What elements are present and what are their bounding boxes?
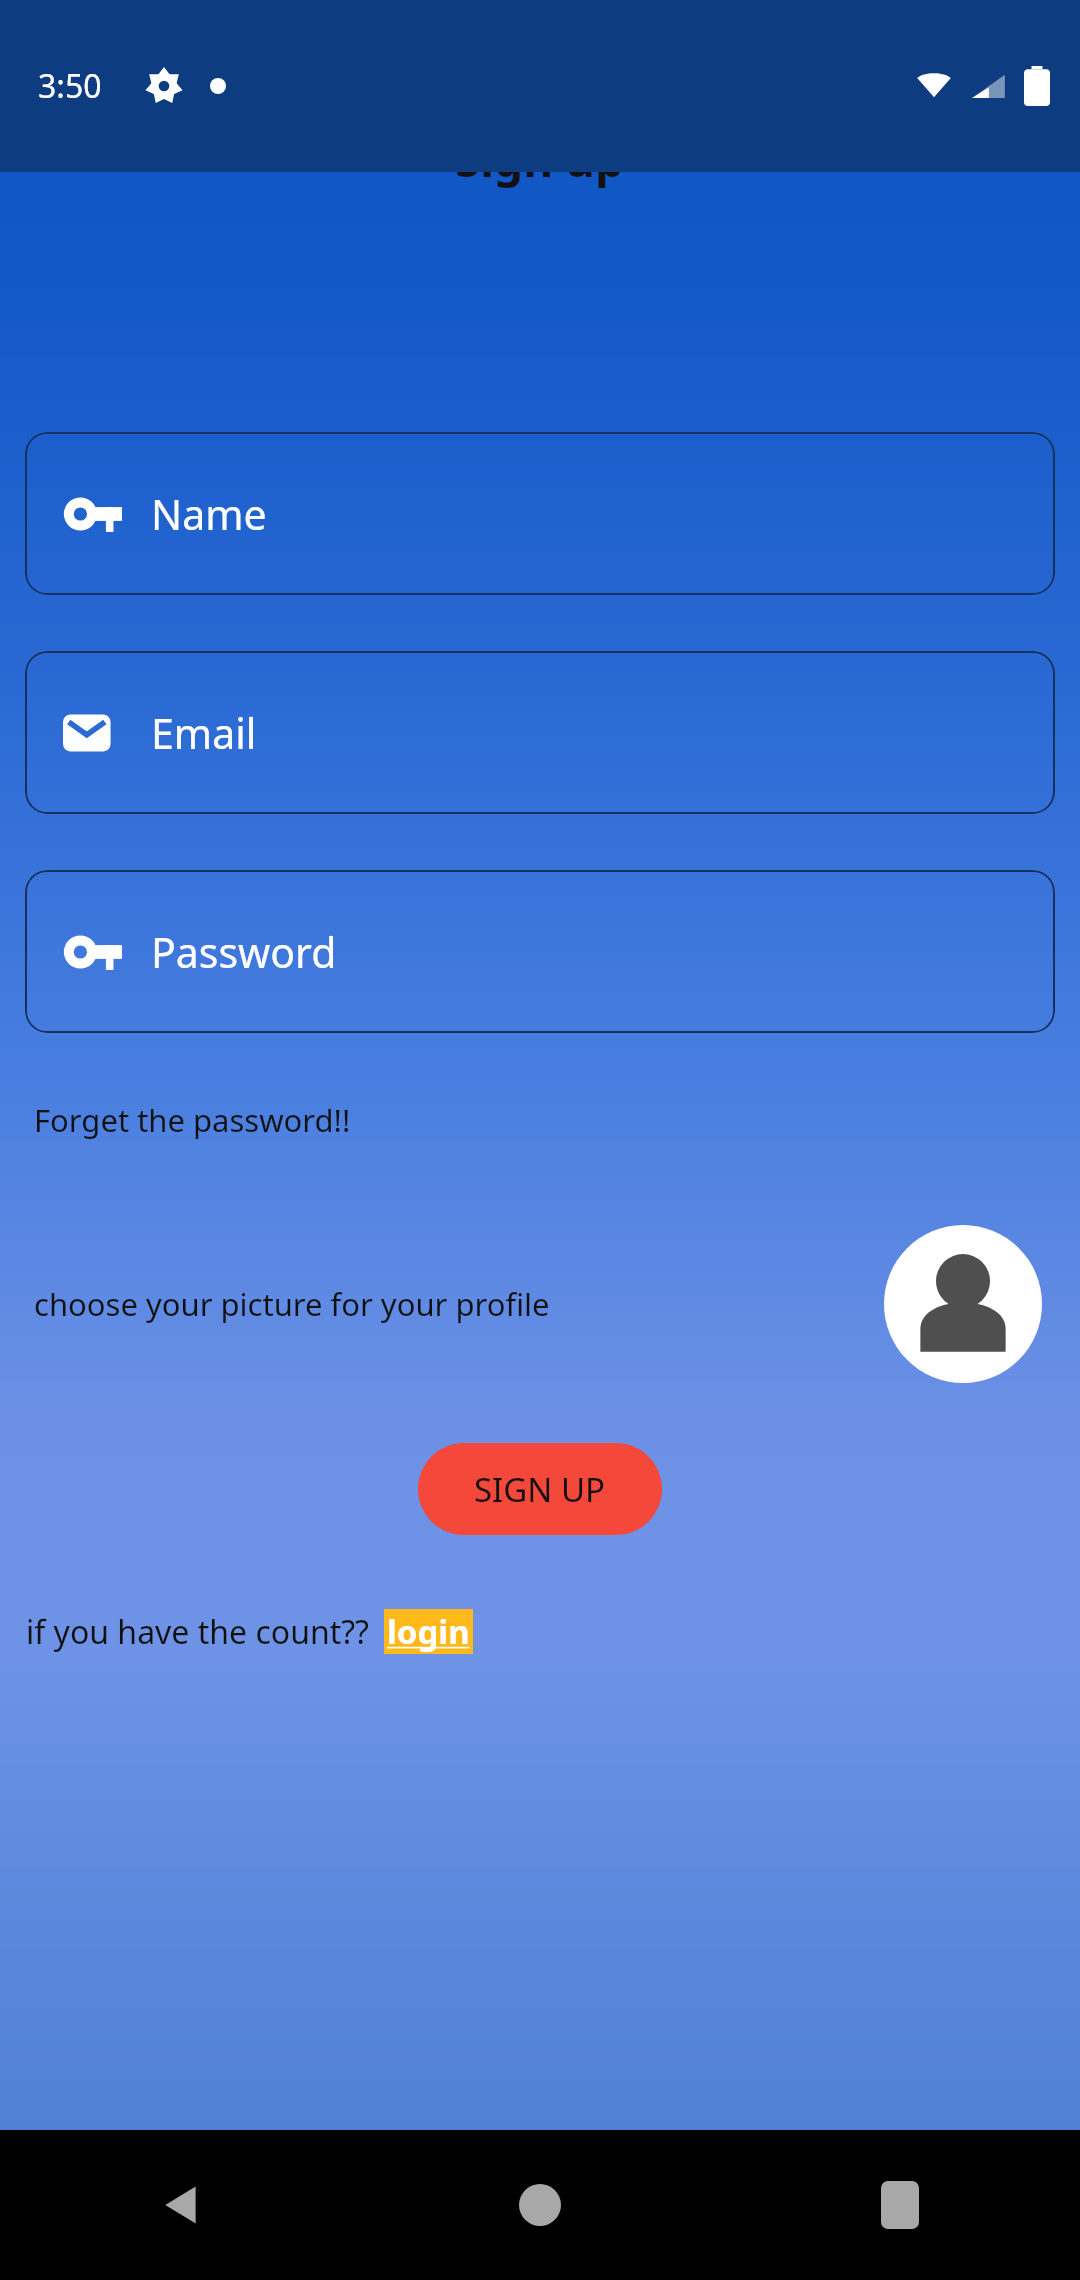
button[interactable]: Name bbox=[25, 432, 1055, 595]
staticText: SIGN UP bbox=[474, 1467, 606, 1512]
staticText: Name bbox=[151, 486, 267, 542]
staticText: Password bbox=[151, 924, 337, 980]
staticText: choose your picture for your profile bbox=[34, 1283, 550, 1325]
button[interactable]: Password bbox=[25, 870, 1055, 1033]
button[interactable]: SIGN UP bbox=[418, 1443, 662, 1535]
staticText: Forget the password!! bbox=[34, 1099, 351, 1141]
button[interactable]: Choose profile picture bbox=[884, 1225, 1042, 1383]
staticText: login bbox=[387, 1609, 470, 1654]
button[interactable]: Back bbox=[0, 2130, 360, 2280]
button[interactable]: Email bbox=[25, 651, 1055, 814]
button[interactable]: Recent apps bbox=[720, 2130, 1080, 2280]
staticText: Email bbox=[151, 705, 257, 761]
staticText: if you have the count?? bbox=[26, 1610, 370, 1654]
button[interactable]: Home bbox=[360, 2130, 720, 2280]
staticText: Sign up bbox=[455, 128, 625, 191]
staticText: 3:50 bbox=[38, 64, 102, 108]
button[interactable]: login bbox=[384, 1609, 473, 1654]
button[interactable]: Forget the password!! bbox=[34, 1099, 351, 1141]
